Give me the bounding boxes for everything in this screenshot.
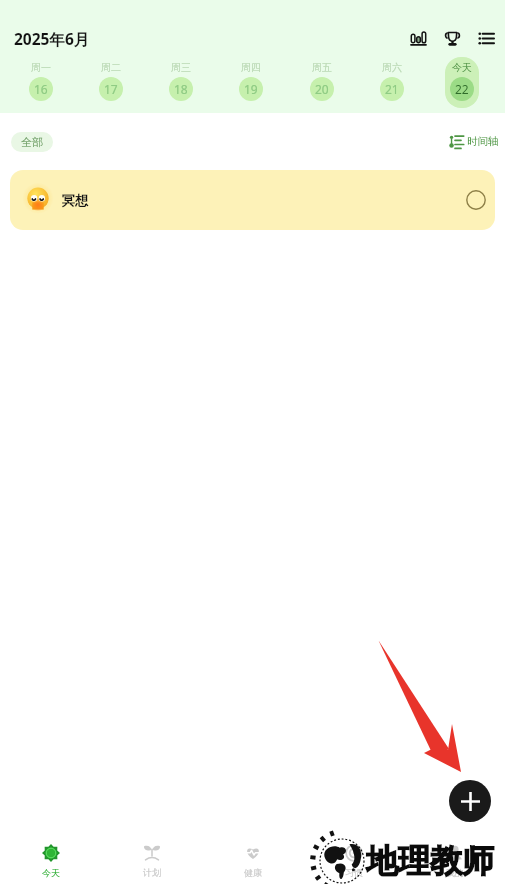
staticText: 冥想 — [62, 192, 88, 208]
staticText: 20 — [315, 81, 329, 97]
staticText: 16 — [34, 81, 48, 97]
button[interactable]: 周三 — [164, 57, 198, 108]
button[interactable]: 健康 — [202, 838, 303, 884]
staticText: 计划 — [143, 867, 161, 878]
button[interactable]: 计划 — [101, 838, 202, 884]
staticText: 今天 — [42, 867, 60, 878]
staticText: 周四 — [241, 61, 261, 74]
button[interactable]: 我的 — [404, 838, 505, 884]
staticText: 周一 — [31, 61, 51, 74]
button[interactable]: 全部 — [11, 132, 53, 152]
staticText: 今天 — [452, 61, 472, 74]
button[interactable]: 冥想 — [10, 170, 495, 230]
button[interactable]: Statistics — [409, 29, 427, 47]
button[interactable]: 周二 — [94, 57, 128, 108]
button[interactable]: 周五 — [305, 57, 339, 108]
staticText: 时间轴 — [467, 135, 499, 148]
staticText: 地理教师 — [366, 841, 494, 881]
button[interactable]: 周一 — [24, 57, 58, 108]
button[interactable]: Add task — [449, 780, 491, 822]
staticText: 2025年6月 — [14, 28, 90, 49]
button[interactable]: Achievements — [443, 29, 461, 47]
button[interactable]: 时间轴 — [440, 130, 496, 153]
staticText: 周五 — [312, 61, 332, 74]
staticText: 习惯 — [345, 867, 363, 878]
button[interactable]: 今天 — [445, 57, 479, 108]
staticText: 周二 — [101, 61, 121, 74]
staticText: 周六 — [382, 61, 402, 74]
staticText: 19 — [244, 81, 258, 97]
staticText: 22 — [455, 81, 469, 97]
staticText: 周三 — [171, 61, 191, 74]
staticText: 18 — [174, 81, 188, 97]
staticText: 健康 — [244, 867, 262, 878]
button[interactable]: 习惯 — [303, 838, 404, 884]
staticText: 21 — [385, 81, 399, 97]
button[interactable]: Menu — [477, 29, 495, 47]
staticText: 全部 — [21, 135, 43, 149]
button[interactable]: 周六 — [375, 57, 409, 108]
button[interactable]: 周四 — [234, 57, 268, 108]
button[interactable]: 今天 — [0, 838, 101, 884]
staticText: 17 — [104, 81, 118, 97]
staticText: 我的 — [446, 867, 464, 878]
